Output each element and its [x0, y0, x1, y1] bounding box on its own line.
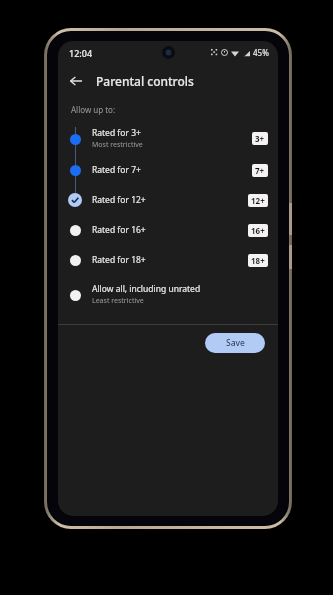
staticText: Rated for 7+ — [92, 164, 141, 176]
staticText: 18+ — [251, 255, 265, 266]
button[interactable]: Rated for 7+ — [58, 163, 278, 193]
staticText: Rated for 16+ — [92, 224, 146, 236]
staticText: Rated for 12+ — [92, 194, 146, 206]
staticText: Parental controls — [96, 73, 194, 89]
button[interactable]: Rated for 18+ — [58, 253, 278, 283]
staticText: 7+ — [255, 165, 265, 176]
staticText: 16+ — [251, 225, 265, 236]
button[interactable]: Allow all, including unrated — [58, 283, 278, 319]
button[interactable]: Rated for 12+ — [58, 193, 278, 223]
staticText: Least restrictive — [92, 296, 144, 306]
button[interactable]: Back — [63, 68, 89, 94]
staticText: 45% — [253, 47, 269, 58]
staticText: 12+ — [251, 195, 265, 206]
staticText: Allow all, including unrated — [92, 283, 201, 295]
button[interactable]: Save — [205, 333, 265, 353]
staticText: Allow up to: — [71, 104, 116, 115]
staticText: Most restrictive — [92, 140, 143, 150]
button[interactable]: Rated for 3+ — [58, 127, 278, 163]
staticText: Save — [226, 337, 245, 349]
staticText: Rated for 18+ — [92, 254, 146, 266]
button[interactable]: Rated for 16+ — [58, 223, 278, 253]
staticText: 12:04 — [69, 47, 93, 59]
staticText: Rated for 3+ — [92, 127, 141, 139]
staticText: 3+ — [255, 133, 265, 144]
